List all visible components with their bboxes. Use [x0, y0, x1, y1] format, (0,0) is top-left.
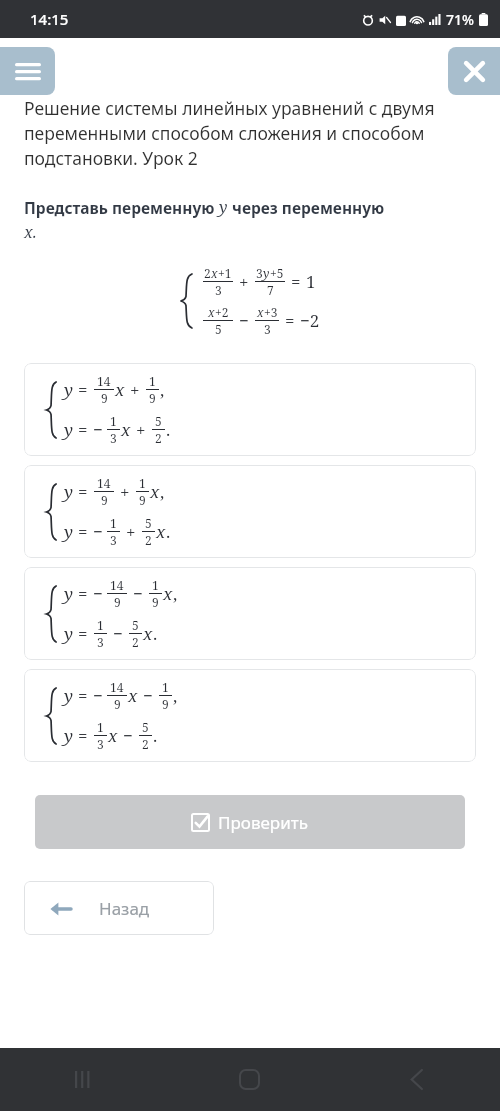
staticText: . — [153, 724, 158, 747]
button[interactable]: y — [24, 669, 476, 762]
staticText: − — [239, 309, 249, 332]
button[interactable]: Назад — [24, 881, 214, 935]
staticText: x — [163, 582, 173, 605]
staticText: 1 — [139, 475, 146, 491]
staticText: +1 — [218, 265, 232, 281]
staticText: 2 — [204, 265, 211, 281]
staticText: = — [291, 270, 301, 293]
staticText: Проверить — [218, 811, 308, 834]
staticText: x — [211, 265, 218, 281]
staticText: = — [78, 582, 88, 605]
staticText: + — [120, 480, 130, 503]
staticText: 9 — [101, 492, 108, 508]
staticText: 14 — [97, 475, 111, 491]
button[interactable]: Menu — [0, 47, 55, 95]
staticText: 3 — [264, 321, 271, 337]
staticText: y — [64, 622, 73, 645]
staticText: 1 — [162, 679, 169, 695]
staticText: y — [219, 196, 228, 218]
staticText: 2 — [142, 736, 149, 752]
staticText: = — [78, 724, 88, 747]
staticText: 9 — [101, 390, 108, 406]
staticText: x — [108, 724, 118, 747]
staticText: −2 — [300, 309, 320, 332]
staticText: +2 — [215, 304, 229, 320]
staticText: x — [115, 378, 125, 401]
staticText: = — [78, 480, 88, 503]
staticText: 9 — [152, 594, 159, 610]
staticText: 3 — [110, 430, 117, 446]
staticText: = — [78, 684, 88, 707]
staticText: Назад — [99, 897, 150, 920]
staticText: y — [263, 265, 270, 281]
staticText: 3 — [215, 282, 222, 298]
staticText: 3 — [97, 736, 104, 752]
staticText: , — [160, 480, 165, 503]
staticText: , — [173, 582, 178, 605]
staticText: 1 — [306, 270, 316, 293]
staticText: y — [64, 480, 73, 503]
staticText: = — [78, 378, 88, 401]
staticText: 9 — [149, 390, 156, 406]
staticText: 71% — [446, 10, 474, 29]
staticText: − — [93, 520, 103, 543]
staticText: 5 — [145, 515, 152, 531]
staticText: 9 — [114, 594, 121, 610]
staticText: = — [78, 418, 88, 441]
staticText: x — [121, 418, 131, 441]
staticText: 14 — [97, 373, 111, 389]
staticText: x — [257, 304, 264, 320]
staticText: 5 — [215, 321, 222, 337]
staticText: − — [123, 724, 133, 747]
staticText: + — [136, 418, 146, 441]
staticText: x. — [24, 221, 37, 243]
button[interactable]: y — [24, 567, 476, 660]
staticText: y — [64, 724, 73, 747]
staticText: Решение системы линейных уравнений с дву… — [24, 96, 474, 170]
staticText: y — [64, 684, 73, 707]
staticText: x — [208, 304, 215, 320]
staticText: + — [239, 270, 249, 293]
staticText: − — [93, 582, 103, 605]
staticText: − — [93, 684, 103, 707]
staticText: 1 — [110, 515, 117, 531]
staticText: x — [128, 684, 138, 707]
staticText: через переменную — [228, 197, 385, 218]
staticText: 9 — [139, 492, 146, 508]
staticText: 2 — [145, 532, 152, 548]
button[interactable]: Проверить — [35, 795, 465, 849]
staticText: = — [78, 622, 88, 645]
staticText: x — [150, 480, 160, 503]
staticText: = — [285, 309, 295, 332]
staticText: 1 — [97, 617, 104, 633]
staticText: 3 — [97, 634, 104, 650]
staticText: − — [113, 622, 123, 645]
staticText: , — [173, 684, 178, 707]
staticText: 1 — [149, 373, 156, 389]
staticText: y — [64, 582, 73, 605]
staticText: y — [64, 520, 73, 543]
staticText: . — [166, 520, 171, 543]
button[interactable]: y — [24, 363, 476, 456]
staticText: 14 — [110, 679, 124, 695]
staticText: 9 — [114, 696, 121, 712]
staticText: + — [126, 520, 136, 543]
staticText: 5 — [142, 719, 149, 735]
staticText: 1 — [152, 577, 159, 593]
staticText: 2 — [155, 430, 162, 446]
staticText: + — [130, 378, 140, 401]
button[interactable]: Close — [448, 47, 500, 95]
staticText: − — [143, 684, 153, 707]
button[interactable]: y — [24, 465, 476, 558]
staticText: . — [166, 418, 171, 441]
staticText: 9 — [162, 696, 169, 712]
staticText: 3 — [110, 532, 117, 548]
staticText: . — [153, 622, 158, 645]
staticText: 14 — [110, 577, 124, 593]
staticText: 5 — [132, 617, 139, 633]
staticText: − — [93, 418, 103, 441]
staticText: +5 — [270, 265, 284, 281]
